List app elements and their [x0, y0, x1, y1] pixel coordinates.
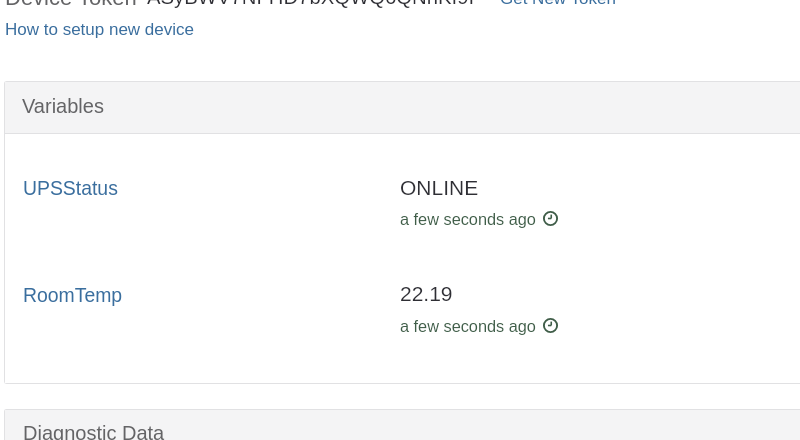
- button[interactable]: UPSStatus: [5, 157, 800, 233]
- button[interactable]: RoomTemp: [5, 264, 800, 340]
- staticText: Variables: [22, 95, 104, 117]
- staticText: a few seconds ago: [400, 210, 536, 228]
- button[interactable]: How to setup new device: [2, 19, 194, 40]
- staticText: UPSStatus: [23, 177, 118, 199]
- staticText: Diagnostic Data: [23, 422, 165, 440]
- staticText: Get New Token: [500, 0, 616, 8]
- other: Last updated: [543, 211, 558, 226]
- staticText: How to setup new device: [5, 20, 194, 39]
- staticText: ASyBWV7NFHD7bXQWQ6QNhKI9I: [147, 0, 475, 9]
- staticText: a few seconds ago: [400, 317, 536, 335]
- staticText: RoomTemp: [23, 284, 123, 306]
- staticText: 22.19: [400, 282, 453, 305]
- staticText: ONLINE: [400, 176, 479, 199]
- other: Last updated: [543, 318, 558, 333]
- staticText: Device Token: [5, 0, 137, 10]
- button[interactable]: Get New Token: [497, 0, 617, 8]
